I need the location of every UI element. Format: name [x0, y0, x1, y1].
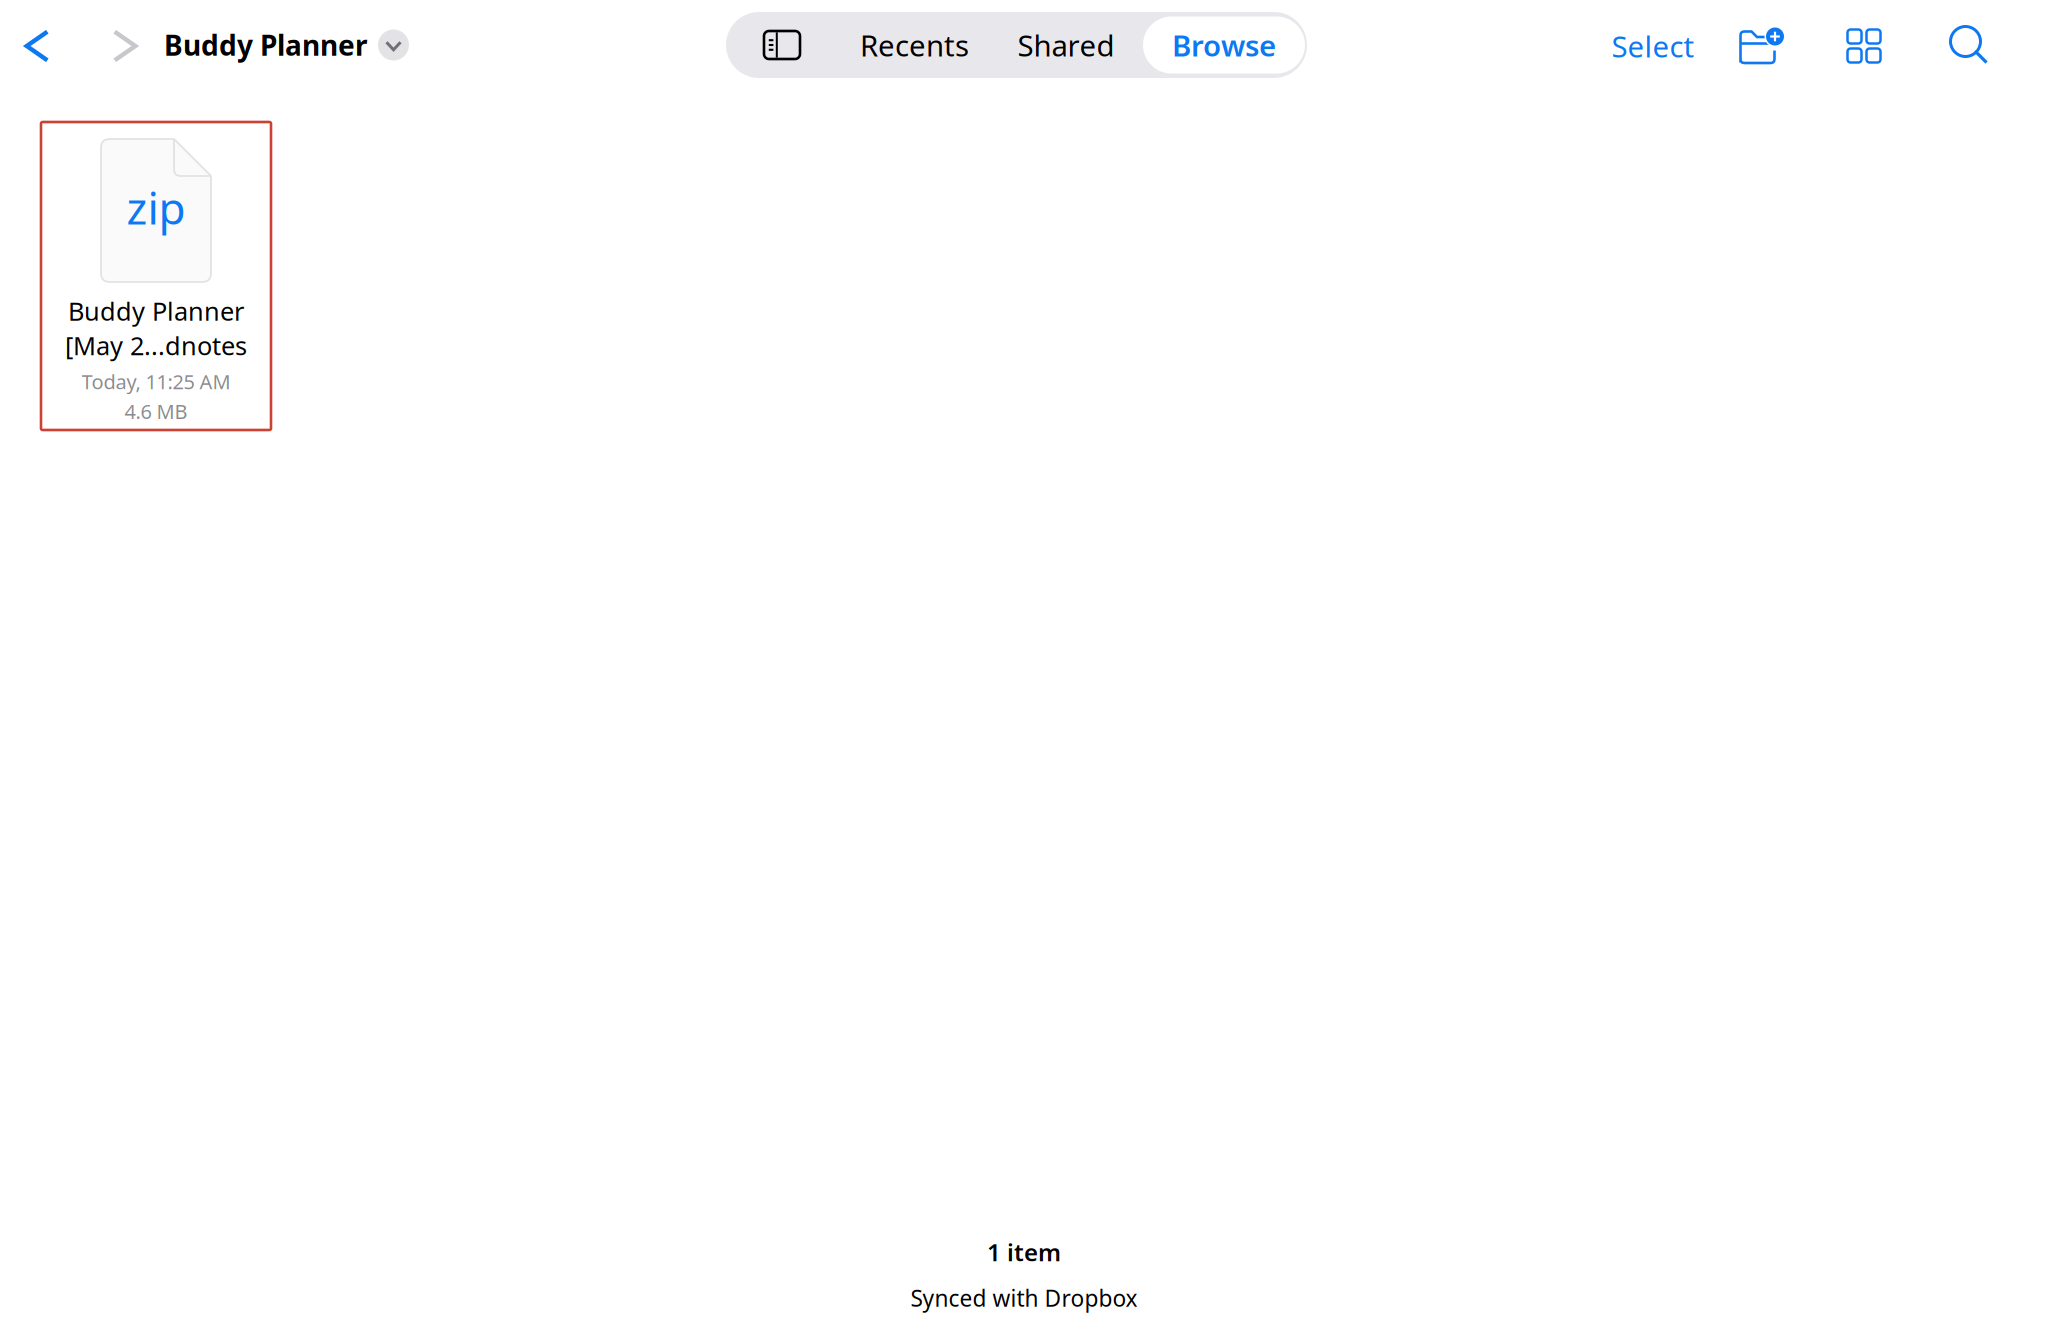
staticText: Recents [860, 25, 969, 64]
staticText: Select [1611, 26, 1694, 65]
staticText: Buddy Planner [68, 294, 244, 328]
button[interactable]: Browse [1143, 16, 1305, 73]
staticText: Today, 11:25 AM [81, 368, 230, 395]
button[interactable]: zip [41, 122, 271, 430]
button[interactable]: Buddy Planner [156, 16, 417, 74]
button[interactable]: Back [8, 17, 66, 75]
button[interactable]: Toggle Sidebar [726, 19, 840, 71]
button[interactable]: Search [1915, 17, 2025, 75]
staticText: Buddy Planner [164, 26, 368, 64]
staticText: Shared [1017, 25, 1114, 64]
button[interactable]: New Folder [1713, 17, 1813, 75]
staticText: Synced with Dropbox [910, 1283, 1137, 1313]
button[interactable]: Shared [989, 19, 1143, 71]
button[interactable]: Select [1593, 17, 1713, 75]
staticText: 1 item [987, 1236, 1061, 1268]
staticText: Browse [1172, 25, 1276, 64]
button[interactable]: Recents [840, 19, 989, 71]
staticText: zip [126, 178, 185, 237]
staticText: [May 2...dnotes [65, 329, 247, 362]
button[interactable]: View Options [1813, 17, 1915, 75]
staticText: 4.6 MB [124, 398, 187, 424]
button[interactable]: Forward [96, 17, 154, 75]
